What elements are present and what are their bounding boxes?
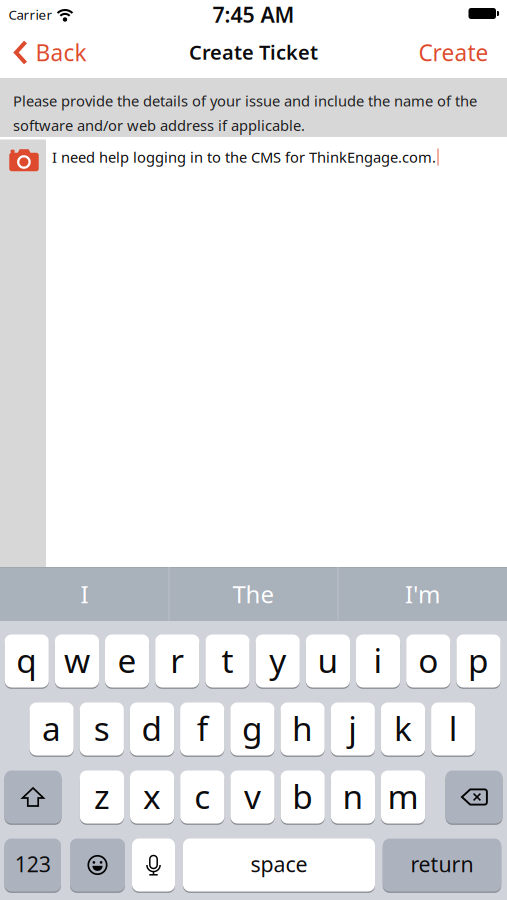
staticText: b <box>292 774 313 818</box>
staticText: u <box>317 638 338 682</box>
button[interactable]: t <box>205 633 250 688</box>
staticText: o <box>418 638 438 682</box>
button[interactable]: l <box>431 701 475 756</box>
staticText: f <box>197 706 208 750</box>
staticText: Carrier <box>8 6 52 23</box>
staticText: 123 <box>15 850 51 878</box>
staticText: I <box>80 578 88 610</box>
button[interactable]: m <box>381 769 425 824</box>
staticText: Please provide the details of your issue… <box>13 91 477 110</box>
staticText: I need help logging in to the CMS for Th… <box>52 147 436 167</box>
staticText: c <box>194 774 210 818</box>
staticText: n <box>342 774 363 818</box>
button[interactable]: u <box>306 633 350 688</box>
button[interactable]: The <box>169 567 337 621</box>
staticText: 7:45 AM <box>212 0 294 29</box>
staticText: t <box>221 638 233 682</box>
button[interactable]: Delete <box>445 769 502 824</box>
button[interactable]: 123 <box>4 837 61 892</box>
button[interactable]: d <box>130 701 174 756</box>
staticText: p <box>468 638 489 682</box>
button[interactable]: v <box>230 769 275 824</box>
staticText: y <box>269 638 286 682</box>
button[interactable]: Add photo <box>0 137 46 177</box>
button[interactable]: Shift <box>4 769 61 824</box>
staticText: software and/or web address if applicabl… <box>13 115 305 135</box>
button[interactable]: e <box>105 633 149 688</box>
button[interactable]: k <box>381 701 425 756</box>
button[interactable]: h <box>280 701 325 756</box>
staticText: return <box>410 850 473 878</box>
button[interactable]: Create <box>418 27 488 78</box>
staticText: h <box>292 706 313 750</box>
button[interactable]: c <box>180 769 224 824</box>
staticText: r <box>170 638 184 682</box>
button[interactable]: g <box>230 701 274 756</box>
staticText: l <box>449 706 458 750</box>
staticText: Create Ticket <box>189 39 318 65</box>
button[interactable]: return <box>383 837 501 892</box>
staticText: q <box>16 638 37 682</box>
staticText: a <box>42 706 61 750</box>
button[interactable]: y <box>256 633 300 688</box>
staticText: g <box>242 706 263 750</box>
staticText: e <box>118 638 137 682</box>
button[interactable]: i <box>356 633 400 688</box>
button[interactable]: j <box>331 701 375 756</box>
staticText: w <box>64 638 90 682</box>
button[interactable]: r <box>155 633 199 688</box>
staticText: x <box>143 774 161 818</box>
button[interactable]: s <box>80 701 124 756</box>
staticText: s <box>94 706 110 750</box>
staticText: k <box>394 706 412 750</box>
button[interactable]: q <box>5 633 49 688</box>
staticText: Back <box>35 37 86 67</box>
staticText: Create <box>418 37 488 67</box>
button[interactable]: o <box>406 633 450 688</box>
staticText: j <box>348 706 357 750</box>
staticText: v <box>244 774 261 818</box>
staticText: I'm <box>405 578 440 610</box>
staticText: The <box>232 578 274 610</box>
button[interactable]: I'm <box>338 567 506 621</box>
button[interactable]: b <box>281 769 325 824</box>
staticText: i <box>374 638 383 682</box>
button[interactable]: f <box>180 701 224 756</box>
button[interactable]: space <box>183 837 375 892</box>
button[interactable]: w <box>55 633 99 688</box>
button[interactable]: x <box>130 769 174 824</box>
button[interactable]: p <box>456 633 501 688</box>
button[interactable]: Back <box>13 27 86 78</box>
button[interactable]: I <box>0 567 168 621</box>
button[interactable]: n <box>331 769 375 824</box>
button[interactable]: Dictate <box>132 837 175 892</box>
button[interactable]: Emoji <box>70 837 125 892</box>
staticText: z <box>94 774 110 818</box>
staticText: space <box>250 850 307 878</box>
staticText: m <box>388 774 419 818</box>
button[interactable]: z <box>80 769 124 824</box>
staticText: d <box>141 706 162 750</box>
button[interactable]: a <box>29 701 74 756</box>
